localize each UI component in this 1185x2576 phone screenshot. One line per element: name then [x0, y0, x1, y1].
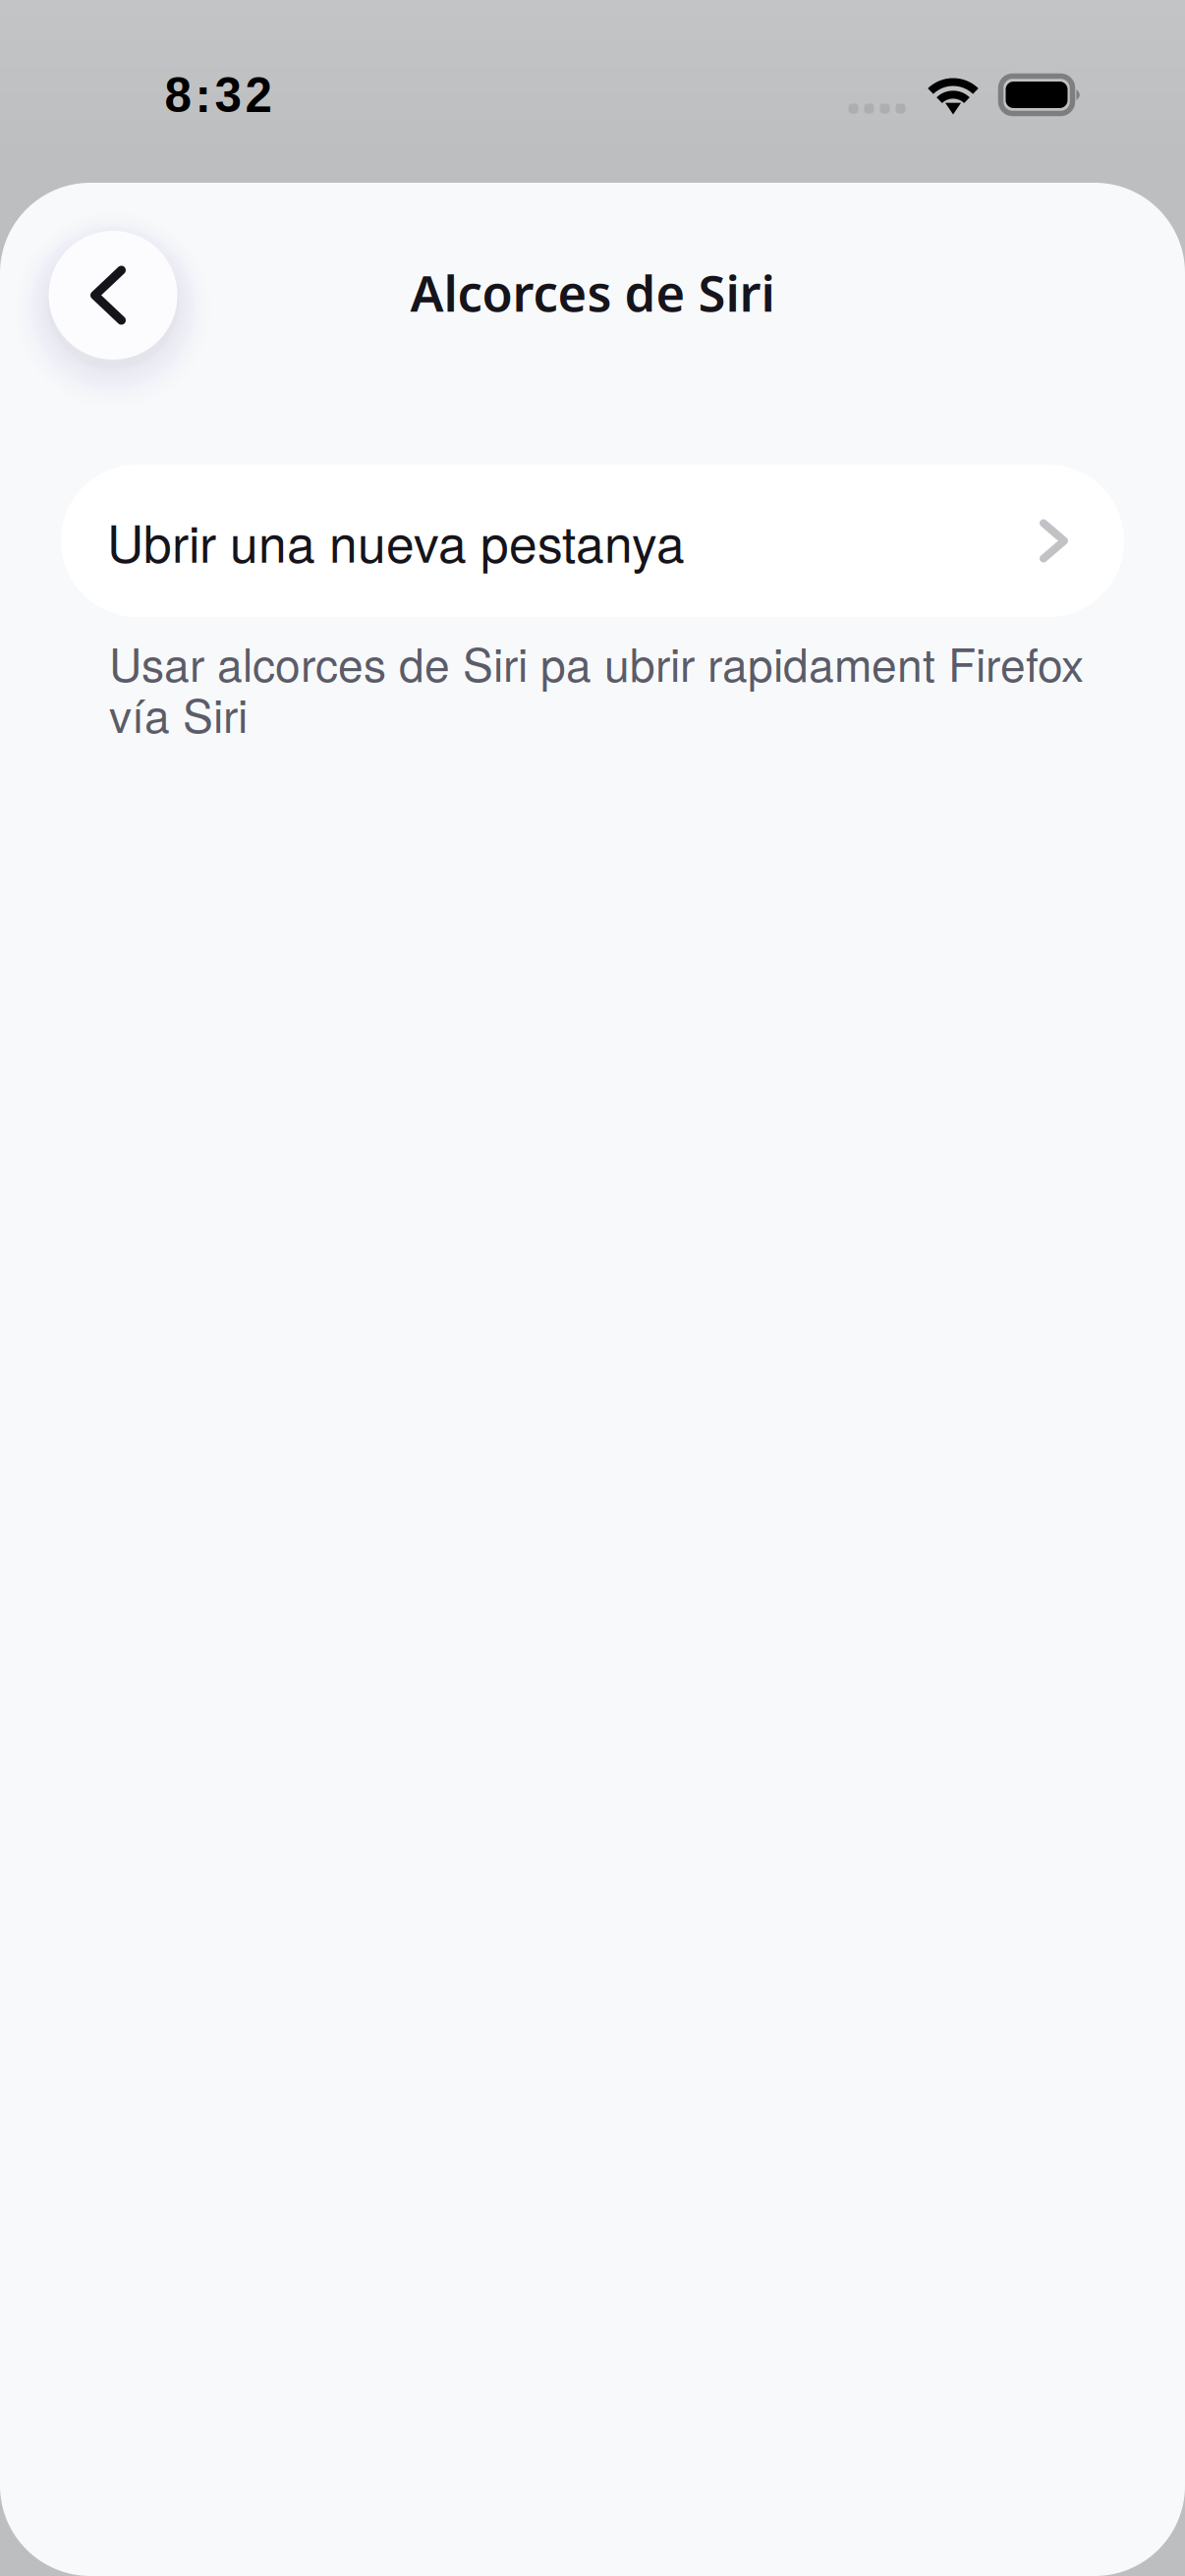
- staticText: Ubrir una nueva pestanya: [107, 505, 685, 577]
- staticText: Alcorces de Siri: [410, 258, 775, 326]
- staticText: Usar alcorces de Siri pa ubrir rapidamen…: [109, 630, 1084, 746]
- button[interactable]: Back: [4, 184, 220, 400]
- button[interactable]: Ubrir una nueva pestanya: [61, 465, 1124, 617]
- staticText: 8:32: [165, 68, 272, 122]
